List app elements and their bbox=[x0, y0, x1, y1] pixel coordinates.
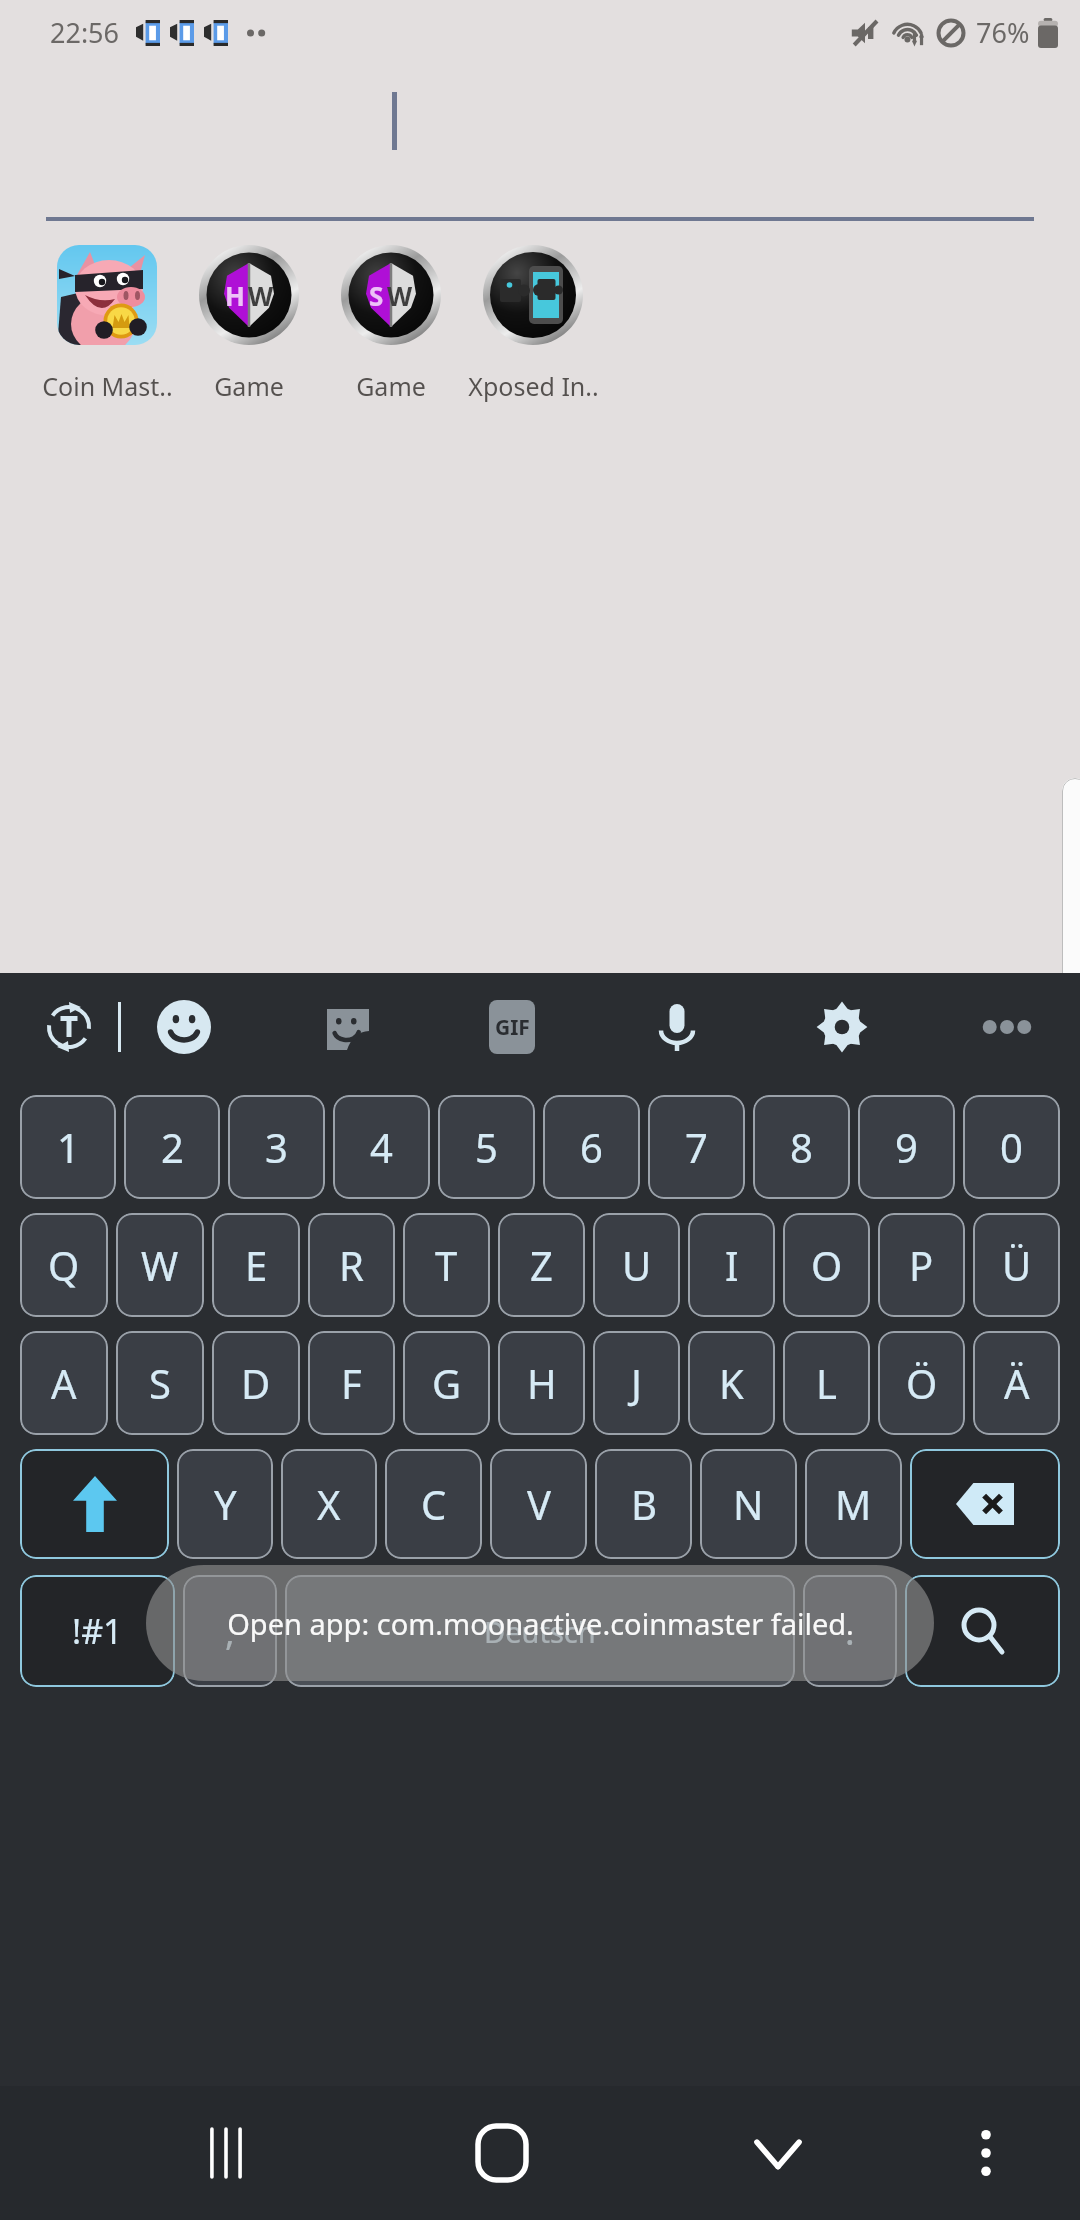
button[interactable]: Search bbox=[905, 1575, 1060, 1687]
button[interactable]: O bbox=[783, 1213, 870, 1317]
button[interactable]: K bbox=[688, 1331, 775, 1435]
staticText: !#1 bbox=[72, 1608, 123, 1654]
staticText: U bbox=[622, 1238, 652, 1292]
staticText: M bbox=[835, 1477, 872, 1531]
button[interactable]: 1 bbox=[20, 1095, 116, 1199]
button[interactable]: A bbox=[20, 1331, 108, 1435]
button[interactable]: Hide keyboard bbox=[730, 2105, 826, 2201]
button[interactable]: More options bbox=[972, 992, 1042, 1062]
staticText: Ä bbox=[1004, 1356, 1030, 1410]
button[interactable]: 2 bbox=[124, 1095, 220, 1199]
staticText: H bbox=[225, 278, 245, 313]
staticText: B bbox=[631, 1477, 657, 1531]
staticText: N bbox=[733, 1477, 764, 1531]
button[interactable]: G bbox=[403, 1331, 490, 1435]
button[interactable]: I bbox=[688, 1213, 775, 1317]
button[interactable]: Emoji bbox=[149, 992, 219, 1062]
button[interactable]: , bbox=[183, 1575, 277, 1687]
staticText: 3 bbox=[265, 1120, 288, 1174]
button[interactable]: 4 bbox=[333, 1095, 430, 1199]
button[interactable]: R bbox=[308, 1213, 395, 1317]
staticText: Ö bbox=[906, 1356, 938, 1410]
button[interactable]: S bbox=[320, 243, 462, 403]
button[interactable]: Stickers bbox=[313, 992, 383, 1062]
button[interactable]: Ä bbox=[973, 1331, 1060, 1435]
staticText: O bbox=[811, 1238, 843, 1292]
staticText: J bbox=[631, 1356, 642, 1410]
button[interactable]: V bbox=[490, 1449, 587, 1559]
button[interactable]: U bbox=[593, 1213, 680, 1317]
staticText: W bbox=[141, 1238, 179, 1292]
button[interactable]: W bbox=[116, 1213, 204, 1317]
staticText: Z bbox=[530, 1238, 553, 1292]
button[interactable]: Q bbox=[20, 1213, 108, 1317]
staticText: Game bbox=[214, 369, 284, 403]
button[interactable]: S bbox=[116, 1331, 204, 1435]
button[interactable]: 3 bbox=[228, 1095, 325, 1199]
button[interactable]: More bbox=[938, 2105, 1034, 2201]
button[interactable]: 8 bbox=[753, 1095, 850, 1199]
staticText: D bbox=[241, 1356, 271, 1410]
staticText: X bbox=[317, 1477, 341, 1531]
staticText: 0 bbox=[1000, 1120, 1023, 1174]
button[interactable]: 6 bbox=[543, 1095, 640, 1199]
staticText: Open app: com.moonactive.coinmaster fail… bbox=[227, 1604, 854, 1643]
button[interactable]: H bbox=[498, 1331, 585, 1435]
staticText: 8 bbox=[790, 1120, 813, 1174]
button[interactable]: 9 bbox=[858, 1095, 955, 1199]
button[interactable]: Y bbox=[177, 1449, 273, 1559]
button[interactable]: M bbox=[805, 1449, 902, 1559]
staticText: 2 bbox=[161, 1120, 184, 1174]
staticText: . bbox=[845, 1607, 855, 1656]
button[interactable]: Shift bbox=[20, 1449, 169, 1559]
button[interactable]: Recents bbox=[178, 2105, 274, 2201]
staticText: T bbox=[435, 1238, 458, 1292]
button[interactable]: B bbox=[595, 1449, 692, 1559]
button[interactable]: C bbox=[385, 1449, 482, 1559]
button[interactable]: Coin Mast.. bbox=[36, 243, 178, 403]
button[interactable]: GIF keyboard bbox=[477, 992, 547, 1062]
button[interactable]: . bbox=[803, 1575, 897, 1687]
button[interactable]: 5 bbox=[438, 1095, 535, 1199]
staticText: 4 bbox=[370, 1120, 393, 1174]
button[interactable]: 0 bbox=[963, 1095, 1060, 1199]
button[interactable]: L bbox=[783, 1331, 870, 1435]
button[interactable]: N bbox=[700, 1449, 797, 1559]
button[interactable]: Voice input bbox=[642, 992, 712, 1062]
button[interactable]: 7 bbox=[648, 1095, 745, 1199]
staticText: Xposed In.. bbox=[468, 369, 599, 403]
button[interactable]: X bbox=[281, 1449, 377, 1559]
button[interactable]: P bbox=[878, 1213, 965, 1317]
button[interactable]: Xposed In.. bbox=[462, 243, 604, 403]
staticText: Y bbox=[214, 1477, 237, 1531]
staticText: A bbox=[51, 1356, 77, 1410]
staticText: V bbox=[527, 1477, 551, 1531]
staticText: F bbox=[341, 1356, 362, 1410]
button[interactable]: Ö bbox=[878, 1331, 965, 1435]
button[interactable]: D bbox=[212, 1331, 300, 1435]
button[interactable]: E bbox=[212, 1213, 300, 1317]
staticText: C bbox=[421, 1477, 447, 1531]
staticText: H bbox=[527, 1356, 557, 1410]
button[interactable]: Home bbox=[454, 2105, 550, 2201]
staticText: W bbox=[387, 278, 413, 313]
staticText: 5 bbox=[475, 1120, 498, 1174]
staticText: K bbox=[719, 1356, 744, 1410]
staticText: R bbox=[339, 1238, 364, 1292]
staticText: W bbox=[248, 278, 274, 313]
button[interactable]: Z bbox=[498, 1213, 585, 1317]
button[interactable]: Backspace bbox=[910, 1449, 1060, 1559]
staticText: Ü bbox=[1002, 1238, 1032, 1292]
button[interactable]: Settings bbox=[807, 992, 877, 1062]
staticText: G bbox=[432, 1356, 462, 1410]
staticText: 7 bbox=[685, 1120, 708, 1174]
button[interactable]: T bbox=[403, 1213, 490, 1317]
button[interactable]: Deutsch bbox=[285, 1575, 795, 1687]
button[interactable]: J bbox=[593, 1331, 680, 1435]
button[interactable]: H bbox=[178, 243, 320, 403]
button[interactable]: Ü bbox=[973, 1213, 1060, 1317]
staticText: P bbox=[909, 1238, 934, 1292]
button[interactable]: !#1 bbox=[20, 1575, 175, 1687]
button[interactable]: F bbox=[308, 1331, 395, 1435]
button[interactable]: Translate bbox=[34, 992, 104, 1062]
